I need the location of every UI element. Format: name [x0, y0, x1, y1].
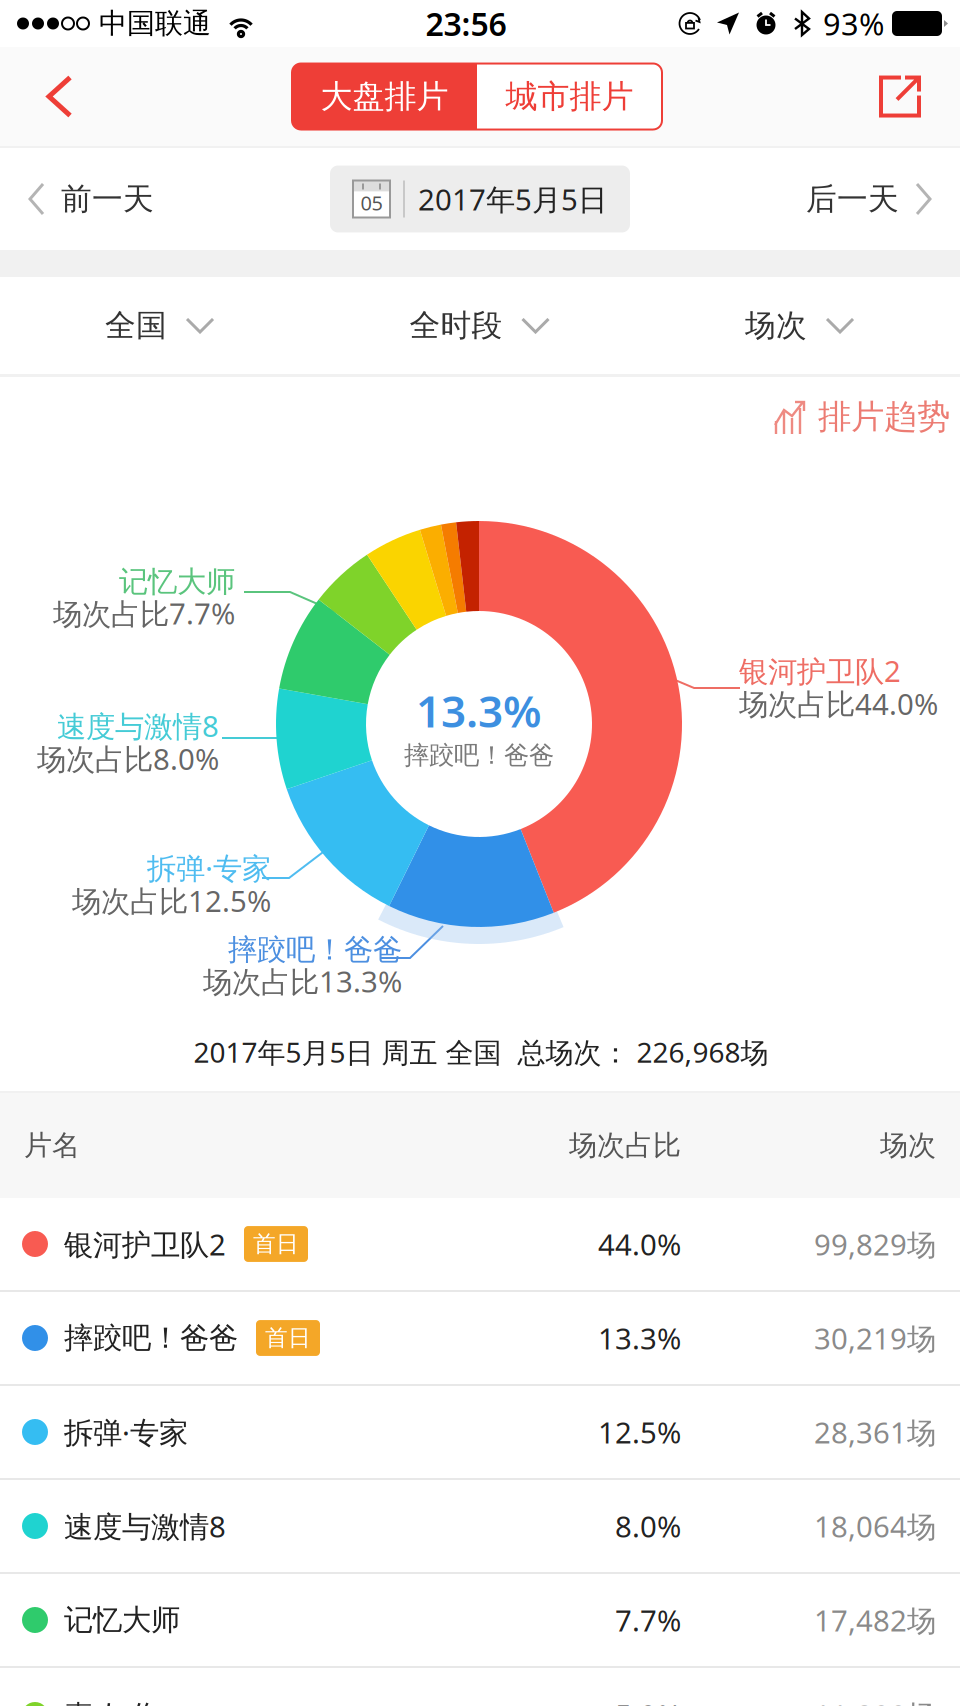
button[interactable]: 喜欢·你: [0, 1668, 960, 1706]
staticText: 首日: [253, 1230, 299, 1258]
staticText: 拆弹·专家: [64, 1412, 188, 1451]
button[interactable]: 排片趋势: [766, 390, 958, 443]
staticText: 场次: [745, 307, 807, 344]
staticText: 13.3%: [416, 681, 542, 740]
staticText: 05: [360, 189, 382, 216]
staticText: 11,800场: [814, 1695, 936, 1706]
staticText: 5.2%: [615, 1695, 681, 1706]
staticText: 全国: [105, 307, 167, 344]
staticText: 18,064场: [814, 1506, 936, 1545]
button[interactable]: 05: [330, 165, 630, 232]
button[interactable]: 银河护卫队2: [0, 1198, 960, 1292]
button[interactable]: 速度与激情8: [0, 1480, 960, 1574]
staticText: 30,219场: [814, 1318, 936, 1357]
staticText: 13.3%: [598, 1318, 681, 1357]
button[interactable]: 记忆大师: [0, 1574, 960, 1668]
staticText: 排片趋势: [818, 396, 950, 437]
staticText: 记忆大师: [119, 564, 235, 600]
staticText: 场次占比13.3%: [203, 962, 402, 1001]
button[interactable]: 前一天: [0, 162, 154, 236]
staticText: 93%: [823, 3, 884, 44]
staticText: 场次占比: [569, 1128, 681, 1163]
button[interactable]: 分享: [852, 47, 960, 146]
staticText: 银河护卫队2: [739, 651, 901, 690]
staticText: 银河护卫队2: [64, 1224, 226, 1263]
staticText: 城市排片: [505, 77, 633, 116]
staticText: 后一天: [806, 180, 899, 218]
staticText: 喜欢·你: [64, 1695, 159, 1706]
staticText: 速度与激情8: [64, 1506, 226, 1545]
staticText: 7.7%: [615, 1600, 681, 1639]
staticText: 23:56: [425, 2, 506, 45]
staticText: 首日: [265, 1324, 311, 1352]
button[interactable]: 全国: [0, 277, 320, 374]
staticText: 28,361场: [814, 1412, 936, 1451]
staticText: 12.5%: [598, 1412, 681, 1451]
staticText: 17,482场: [814, 1600, 936, 1639]
button[interactable]: 后一天: [806, 162, 960, 236]
staticText: 片名: [24, 1128, 80, 1163]
staticText: 摔跤吧！爸爸: [64, 1320, 238, 1356]
staticText: 场次占比44.0%: [739, 684, 938, 723]
staticText: 摔跤吧！爸爸: [404, 740, 554, 771]
staticText: 2017年5月5日 周五 全国 总场次： 226,968场: [193, 1033, 768, 1071]
button[interactable]: 摔跤吧！爸爸: [0, 1292, 960, 1386]
staticText: 2017年5月5日: [418, 179, 607, 218]
staticText: 99,829场: [814, 1224, 936, 1263]
staticText: 场次: [880, 1128, 936, 1163]
staticText: 记忆大师: [64, 1602, 180, 1638]
staticText: 拆弹·专家: [147, 848, 271, 887]
button[interactable]: 城市排片: [477, 63, 662, 129]
staticText: 摔跤吧！爸爸: [228, 932, 402, 968]
button[interactable]: 场次: [640, 277, 960, 374]
staticText: 全时段: [409, 307, 502, 344]
staticText: 场次占比8.0%: [37, 739, 219, 778]
staticText: 中国联通: [99, 6, 211, 41]
button[interactable]: 拆弹·专家: [0, 1386, 960, 1480]
staticText: 前一天: [61, 180, 154, 218]
button[interactable]: 返回: [0, 47, 102, 146]
staticText: 速度与激情8: [57, 706, 219, 745]
button[interactable]: 大盘排片: [292, 63, 477, 129]
staticText: 8.0%: [615, 1506, 681, 1545]
staticText: 44.0%: [598, 1224, 681, 1263]
staticText: 场次占比12.5%: [72, 881, 271, 920]
button[interactable]: 全时段: [320, 277, 640, 374]
staticText: 场次占比7.7%: [53, 594, 235, 633]
staticText: 大盘排片: [320, 77, 448, 116]
